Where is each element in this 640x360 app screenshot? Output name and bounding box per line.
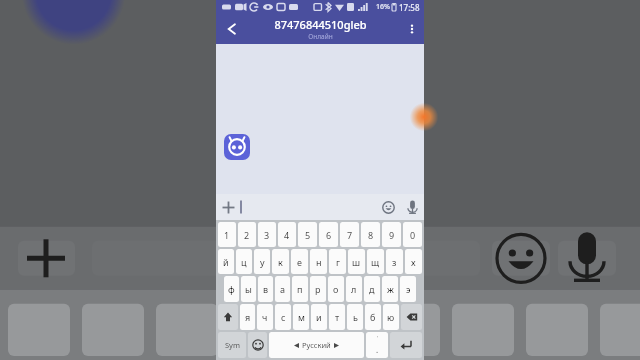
- button[interactable]: 4: [278, 222, 296, 247]
- button[interactable]: б: [365, 304, 381, 330]
- button[interactable]: н: [310, 249, 327, 274]
- button[interactable]: Sym: [218, 332, 246, 358]
- staticText: б: [370, 311, 376, 323]
- button[interactable]: э: [400, 276, 416, 302]
- staticText: э: [406, 283, 411, 295]
- button[interactable]: Shift: [218, 304, 238, 330]
- button[interactable]: р: [310, 276, 326, 302]
- button[interactable]: 5: [298, 222, 317, 247]
- staticText: л: [351, 283, 357, 295]
- button[interactable]: л: [346, 276, 362, 302]
- button[interactable]: Русский: [269, 332, 364, 358]
- button[interactable]: Back: [216, 14, 244, 44]
- button[interactable]: Emoji: [376, 194, 400, 220]
- staticText: о: [333, 283, 339, 295]
- button[interactable]: о: [328, 276, 344, 302]
- button[interactable]: ц: [236, 249, 252, 274]
- button[interactable]: и: [311, 304, 327, 330]
- button[interactable]: More options: [400, 14, 424, 44]
- button[interactable]: с: [275, 304, 291, 330]
- staticText: я: [245, 311, 251, 323]
- button[interactable]: з: [386, 249, 403, 274]
- button[interactable]: ф: [224, 276, 239, 302]
- button[interactable]: а: [275, 276, 290, 302]
- button[interactable]: Emoji keyboard: [248, 332, 267, 358]
- staticText: ь: [353, 311, 358, 323]
- button[interactable]: я: [240, 304, 255, 330]
- staticText: м: [298, 311, 305, 323]
- staticText: ц: [241, 256, 247, 268]
- button[interactable]: 8: [361, 222, 380, 247]
- staticText: ': [377, 335, 379, 342]
- staticText: с: [281, 311, 286, 323]
- staticText: ш: [352, 256, 361, 268]
- staticText: е: [297, 256, 302, 268]
- button[interactable]: 1: [218, 222, 236, 247]
- button[interactable]: в: [258, 276, 273, 302]
- staticText: д: [369, 283, 375, 295]
- button[interactable]: 2: [238, 222, 256, 247]
- staticText: 17:58: [399, 2, 420, 13]
- button[interactable]: [240, 194, 376, 220]
- button[interactable]: ы: [241, 276, 256, 302]
- button[interactable]: 0: [403, 222, 422, 247]
- button[interactable]: ж: [382, 276, 398, 302]
- staticText: п: [297, 283, 303, 295]
- button[interactable]: й: [218, 249, 234, 274]
- button[interactable]: щ: [367, 249, 384, 274]
- button[interactable]: у: [254, 249, 270, 274]
- staticText: и: [316, 311, 322, 323]
- staticText: .: [376, 344, 379, 355]
- staticText: ю: [387, 311, 395, 323]
- staticText: т: [335, 311, 340, 323]
- button[interactable]: ш: [348, 249, 365, 274]
- staticText: х: [411, 256, 416, 268]
- staticText: 3: [264, 229, 270, 241]
- staticText: у: [260, 256, 265, 268]
- staticText: й: [223, 256, 229, 268]
- button[interactable]: ': [366, 332, 388, 358]
- button[interactable]: 3: [258, 222, 276, 247]
- staticText: 2: [244, 229, 250, 241]
- button[interactable]: ь: [347, 304, 363, 330]
- button[interactable]: Sticker: [224, 134, 250, 160]
- staticText: 87476844510gleb: [274, 17, 367, 32]
- button[interactable]: т: [329, 304, 345, 330]
- staticText: ы: [245, 283, 252, 295]
- staticText: р: [315, 283, 321, 295]
- staticText: щ: [371, 256, 380, 268]
- button[interactable]: 7: [340, 222, 359, 247]
- button[interactable]: 6: [319, 222, 338, 247]
- button[interactable]: 9: [382, 222, 401, 247]
- staticText: 0: [410, 229, 416, 241]
- button[interactable]: Backspace: [401, 304, 422, 330]
- staticText: 6: [326, 229, 332, 241]
- button[interactable]: Attach: [216, 194, 240, 220]
- staticText: 9: [389, 229, 395, 241]
- staticText: Русский: [302, 340, 331, 350]
- button[interactable]: е: [291, 249, 308, 274]
- button[interactable]: д: [364, 276, 380, 302]
- button[interactable]: к: [272, 249, 289, 274]
- staticText: в: [263, 283, 269, 295]
- staticText: 4: [284, 229, 290, 241]
- button[interactable]: м: [293, 304, 309, 330]
- staticText: ф: [228, 283, 235, 295]
- staticText: 5: [305, 229, 311, 241]
- staticText: к: [278, 256, 283, 268]
- button[interactable]: Voice message: [400, 194, 424, 220]
- button[interactable]: Enter: [390, 332, 422, 358]
- staticText: н: [316, 256, 322, 268]
- staticText: з: [392, 256, 397, 268]
- button[interactable]: ю: [383, 304, 399, 330]
- button[interactable]: х: [405, 249, 422, 274]
- button[interactable]: п: [292, 276, 308, 302]
- button[interactable]: ч: [257, 304, 273, 330]
- staticText: ж: [387, 283, 394, 295]
- staticText: 1: [224, 229, 230, 241]
- button[interactable]: г: [329, 249, 346, 274]
- staticText: 16%: [376, 2, 390, 12]
- staticText: 8: [368, 229, 374, 241]
- staticText: а: [280, 283, 286, 295]
- staticText: 7: [347, 229, 353, 241]
